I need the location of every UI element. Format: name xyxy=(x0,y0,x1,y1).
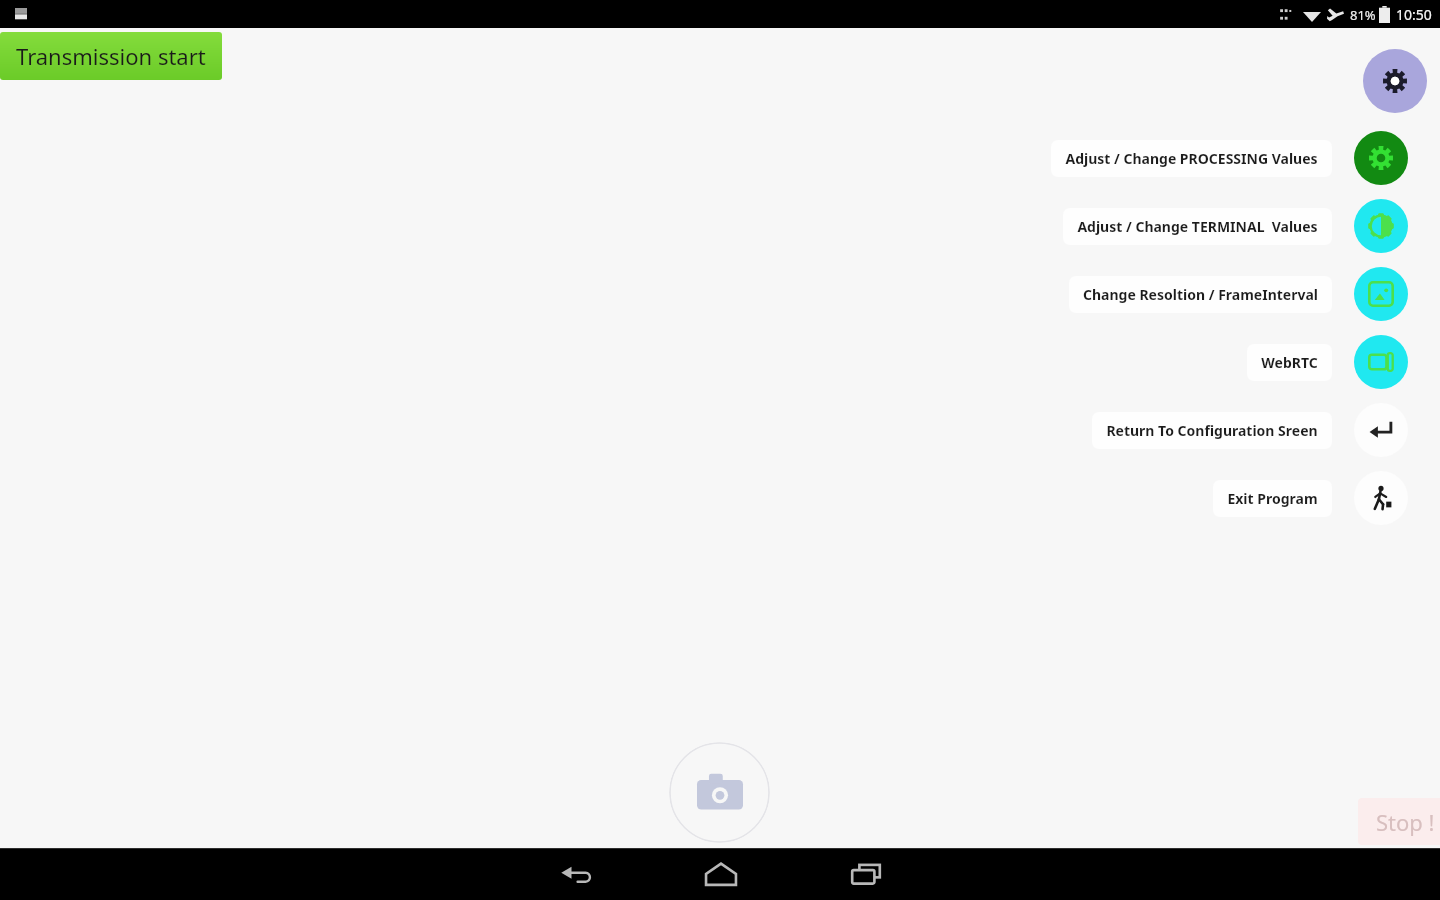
button[interactable]: Back xyxy=(503,848,648,900)
staticText: Adjust / Change PROCESSING Values xyxy=(1065,149,1318,168)
button[interactable]: Home xyxy=(648,848,793,900)
button[interactable]: Recent apps xyxy=(793,848,938,900)
staticText: Change Resoltion / FrameInterval xyxy=(1083,285,1318,304)
staticText: Transmission start xyxy=(16,41,206,71)
staticText: 81% xyxy=(1350,6,1376,24)
button[interactable]: Transmission start xyxy=(0,32,222,80)
button[interactable]: Return To Configuration Sreen xyxy=(1092,412,1332,449)
button[interactable]: Adjust / Change TERMINAL Values xyxy=(1063,208,1332,245)
button[interactable]: WebRTC xyxy=(1354,335,1408,389)
staticText: Stop ! xyxy=(1376,807,1435,837)
staticText: 10:50 xyxy=(1396,5,1432,24)
staticText: Return To Configuration Sreen xyxy=(1106,421,1318,440)
button[interactable]: Exit program xyxy=(1354,471,1408,525)
staticText: Exit Program xyxy=(1227,489,1318,508)
button[interactable]: Stop ! xyxy=(1358,798,1440,845)
button[interactable]: Take picture xyxy=(669,742,770,843)
button[interactable]: Exit Program xyxy=(1213,480,1332,517)
button[interactable]: Adjust / Change PROCESSING Values xyxy=(1051,140,1332,177)
button[interactable]: Return to configuration screen xyxy=(1354,403,1408,457)
button[interactable]: WebRTC xyxy=(1247,344,1332,381)
staticText: Adjust / Change TERMINAL Values xyxy=(1077,217,1318,236)
button[interactable]: Change Resoltion / FrameInterval xyxy=(1069,276,1332,313)
button[interactable]: Adjust or change terminal values xyxy=(1354,199,1408,253)
button[interactable]: Change resolution or frame interval xyxy=(1354,267,1408,321)
button[interactable]: Settings menu xyxy=(1363,49,1427,113)
staticText: WebRTC xyxy=(1261,353,1318,372)
button[interactable]: Adjust or change processing values xyxy=(1354,131,1408,185)
